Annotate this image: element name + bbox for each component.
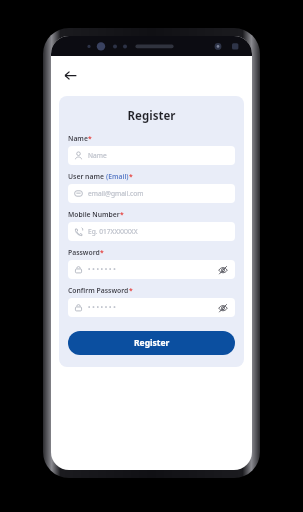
staticText: * [88,134,92,143]
button[interactable]: Name [68,146,235,165]
staticText: email@gmail.com [88,189,144,198]
button[interactable]: Toggle password visibility [217,264,229,276]
staticText: Register [68,108,235,124]
button[interactable]: Toggle password visibility [217,302,229,314]
button[interactable]: • • • • • • • [68,260,235,279]
staticText: * [100,248,104,257]
staticText: Mobile Number [68,210,120,219]
staticText: * [129,286,133,295]
button[interactable]: Register [68,331,235,355]
staticText: • • • • • • • [88,303,116,312]
staticText: * [129,172,133,181]
button[interactable]: Back [57,62,83,88]
staticText: Eg. 017XXXXXXX [88,227,138,236]
staticText: User name [68,172,106,181]
staticText: • • • • • • • [88,265,116,274]
staticText: Password [68,248,100,257]
button[interactable]: Eg. 017XXXXXXX [68,222,235,241]
staticText: (Email) [106,172,129,181]
staticText: Name [68,134,88,143]
button[interactable]: email@gmail.com [68,184,235,203]
staticText: Confirm Password [68,286,129,295]
button[interactable]: • • • • • • • [68,298,235,317]
staticText: Name [88,151,107,160]
staticText: * [120,210,124,219]
staticText: Register [134,337,170,349]
